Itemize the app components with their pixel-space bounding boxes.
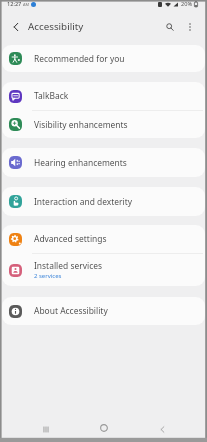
staticText: TalkBack bbox=[34, 90, 69, 102]
staticText: Accessibility bbox=[28, 20, 84, 33]
button[interactable]: Recommended for you bbox=[2, 45, 205, 72]
button[interactable]: Recents bbox=[38, 421, 54, 437]
staticText: Installed services bbox=[34, 260, 102, 272]
button[interactable]: Back bbox=[154, 421, 170, 437]
button[interactable]: Installed services bbox=[2, 254, 205, 286]
staticText: Advanced settings bbox=[34, 233, 107, 245]
button[interactable]: Navigate up bbox=[8, 19, 23, 34]
button[interactable]: Search bbox=[162, 19, 177, 34]
button[interactable]: TalkBack bbox=[2, 82, 205, 110]
staticText: 2 services bbox=[34, 272, 62, 280]
button[interactable]: Home bbox=[96, 420, 112, 436]
button[interactable]: About Accessibility bbox=[2, 297, 205, 325]
staticText: AM bbox=[23, 2, 30, 7]
button[interactable]: Interaction and dexterity bbox=[2, 187, 205, 216]
staticText: Recommended for you bbox=[34, 53, 125, 65]
staticText: 12:27 bbox=[7, 0, 22, 8]
button[interactable]: More options bbox=[182, 19, 197, 34]
button[interactable]: Advanced settings bbox=[2, 225, 205, 253]
staticText: About Accessibility bbox=[34, 305, 108, 317]
button[interactable]: Visibility enhancements bbox=[2, 111, 205, 138]
staticText: Hearing enhancements bbox=[34, 157, 127, 169]
staticText: 20% bbox=[181, 0, 193, 8]
staticText: Interaction and dexterity bbox=[34, 196, 133, 208]
staticText: Visibility enhancements bbox=[34, 119, 128, 131]
button[interactable]: Hearing enhancements bbox=[2, 148, 205, 177]
